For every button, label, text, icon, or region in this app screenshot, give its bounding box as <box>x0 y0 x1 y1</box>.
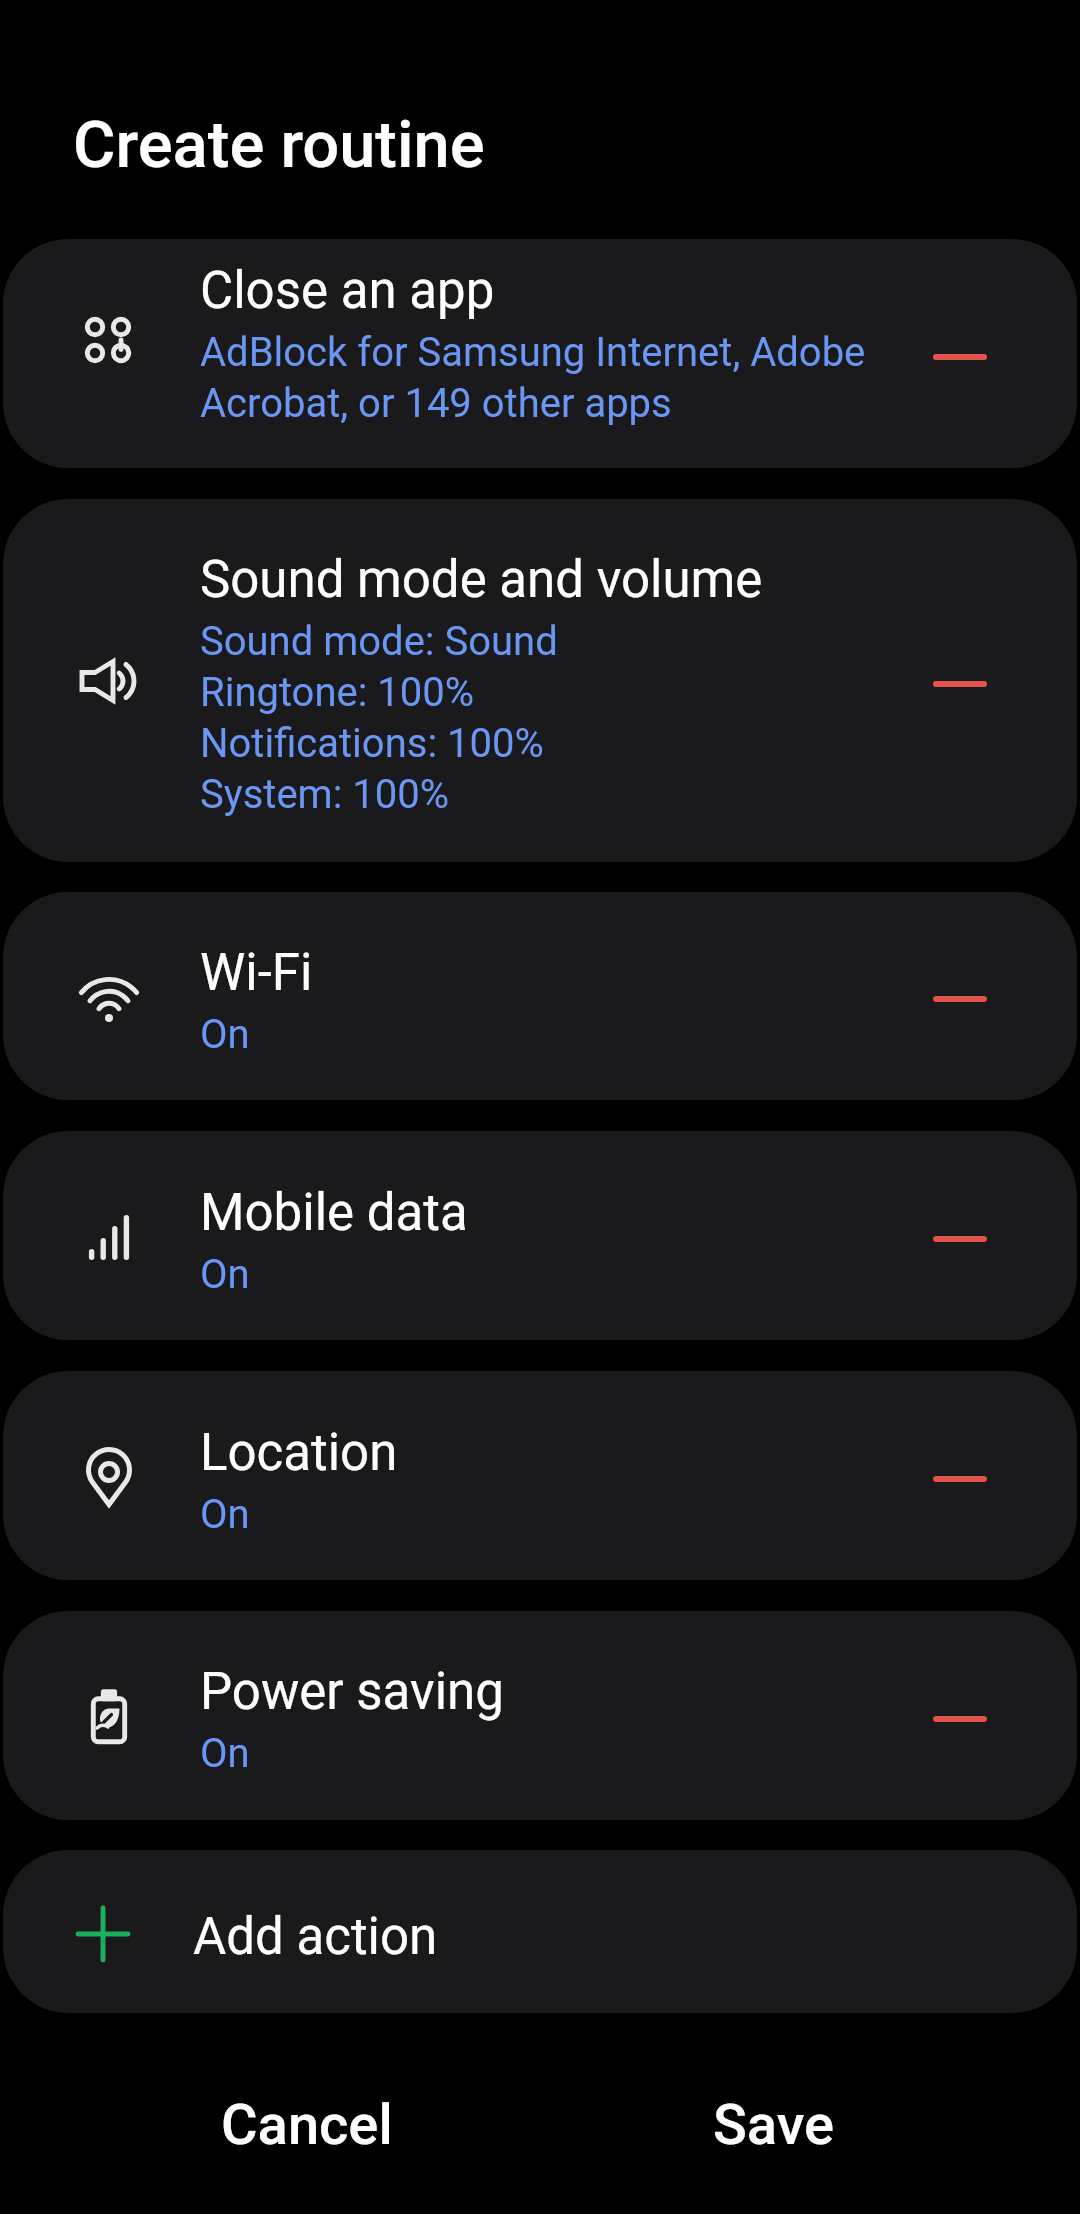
staticText: On <box>200 1008 250 1059</box>
staticText: Acrobat, or 149 other apps <box>200 377 672 428</box>
button[interactable]: Remove action <box>900 297 1020 417</box>
button[interactable]: Remove action <box>900 1179 1020 1299</box>
staticText: Mobile data <box>200 1178 468 1244</box>
staticText: Power saving <box>200 1657 504 1723</box>
staticText: Notifications: 100% <box>200 717 544 768</box>
staticText: Wi-Fi <box>200 938 313 1004</box>
button[interactable]: Save <box>541 2070 1007 2180</box>
staticText: Close an app <box>200 256 495 322</box>
button[interactable]: Location <box>3 1371 1077 1580</box>
button[interactable]: Remove action <box>900 624 1020 744</box>
staticText: On <box>200 1488 250 1539</box>
staticText: Ringtone: 100% <box>200 666 475 717</box>
button[interactable]: Wi-Fi <box>3 892 1077 1100</box>
button[interactable]: Mobile data <box>3 1131 1077 1340</box>
button[interactable]: Cancel <box>73 2070 541 2180</box>
staticText: Create routine <box>73 107 485 183</box>
staticText: Save <box>713 2092 835 2158</box>
staticText: Add action <box>193 1902 438 1968</box>
staticText: Sound mode: Sound <box>200 615 558 666</box>
staticText: AdBlock for Samsung Internet, Adobe <box>200 326 866 377</box>
staticText: System: 100% <box>200 768 450 819</box>
button[interactable]: Sound mode and volume <box>3 499 1077 862</box>
button[interactable]: Power saving <box>3 1611 1077 1820</box>
button[interactable]: Remove action <box>900 1659 1020 1779</box>
button[interactable]: Remove action <box>900 939 1020 1059</box>
staticText: On <box>200 1248 250 1299</box>
button[interactable]: Close an app <box>3 239 1077 468</box>
button[interactable]: Add action <box>3 1850 1077 2013</box>
staticText: On <box>200 1727 250 1778</box>
staticText: Cancel <box>221 2092 393 2158</box>
staticText: Sound mode and volume <box>200 545 763 611</box>
staticText: Location <box>200 1418 398 1484</box>
button[interactable]: Remove action <box>900 1419 1020 1539</box>
